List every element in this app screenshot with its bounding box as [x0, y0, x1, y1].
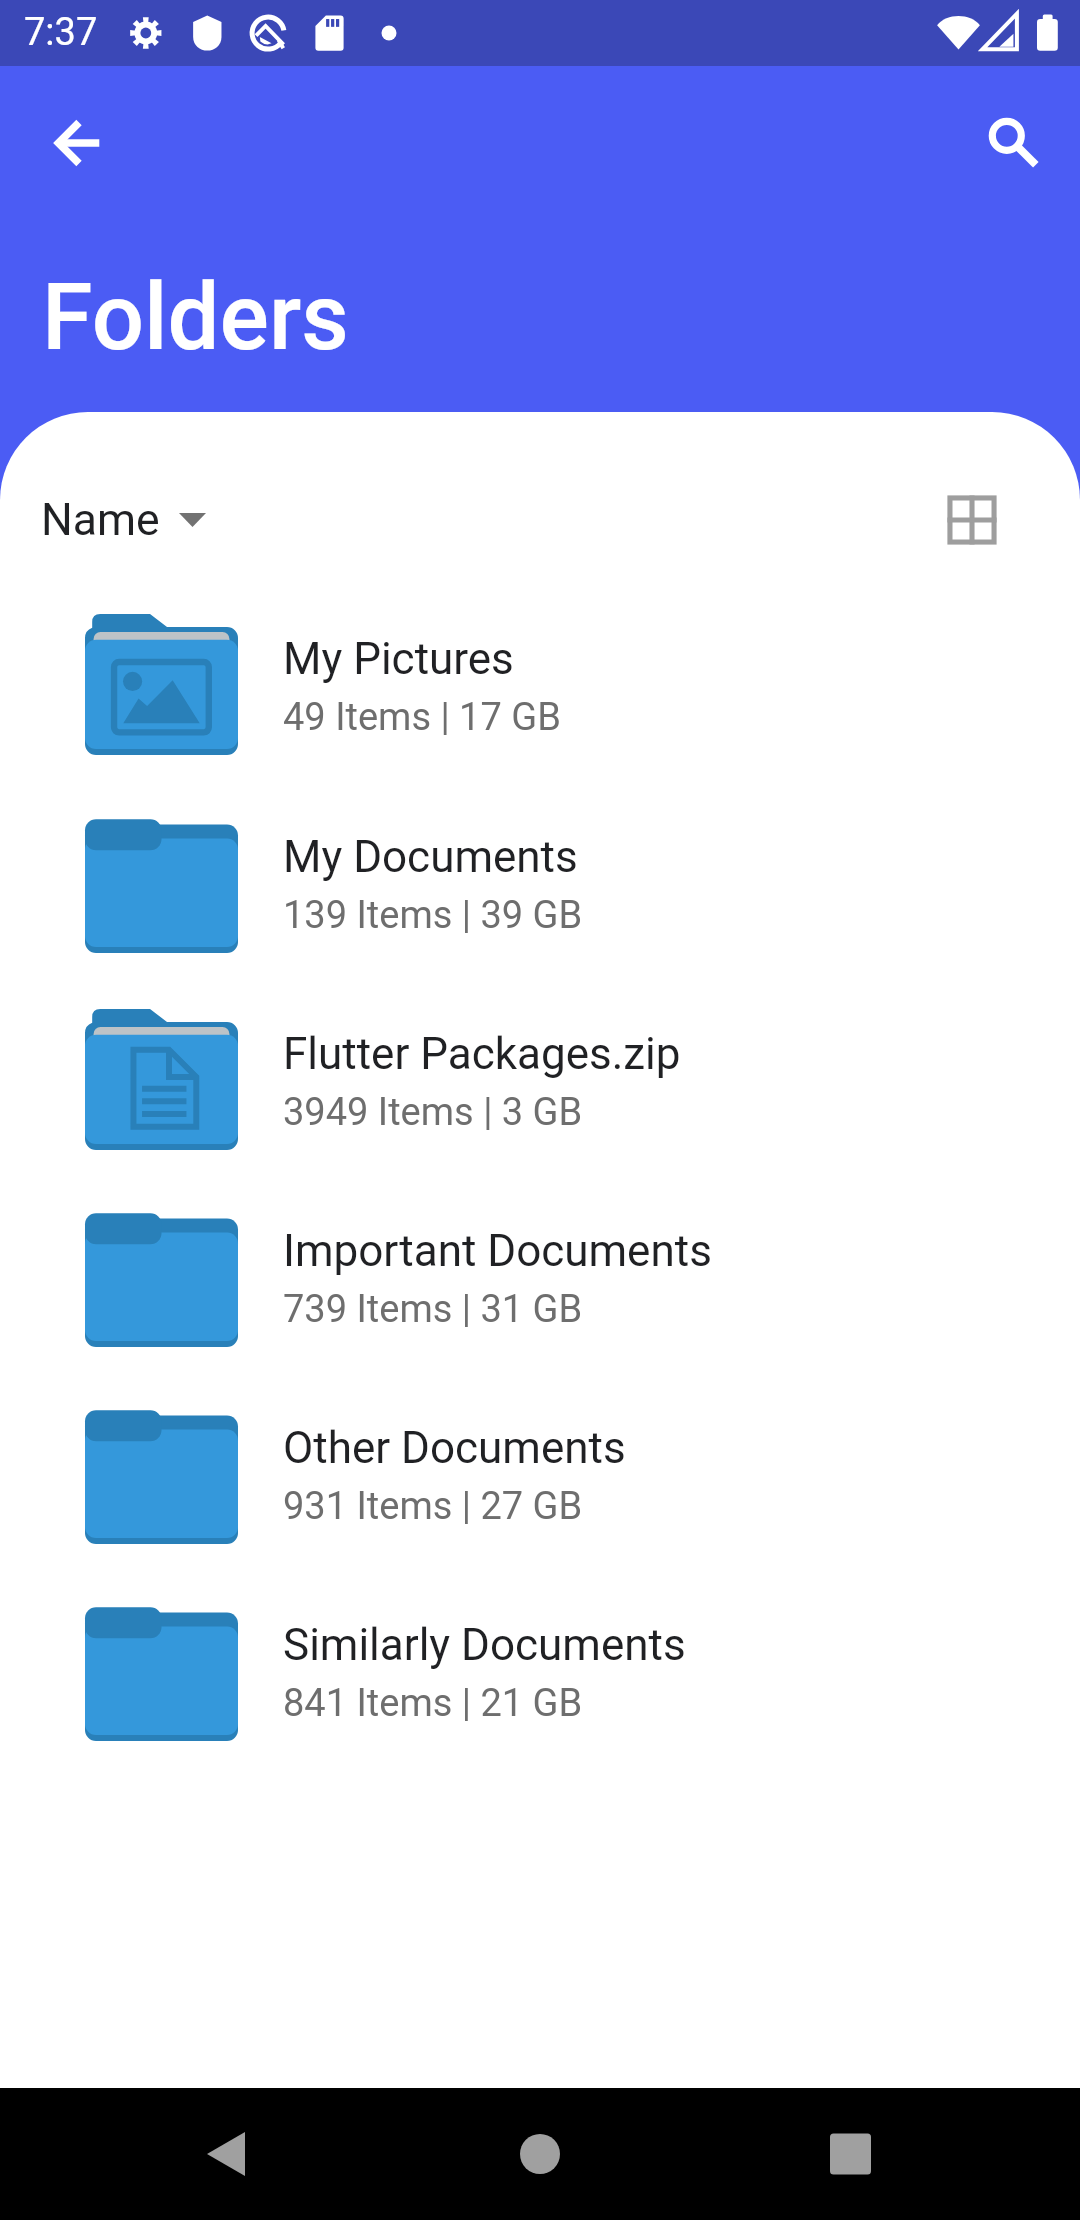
staticText: 49 Items | 17 GB	[283, 695, 561, 740]
button[interactable]: Flutter Packages.zip	[0, 983, 1080, 1180]
staticText: 7:37	[24, 10, 98, 55]
button[interactable]: Recent apps	[760, 2088, 940, 2220]
button[interactable]: Switch to grid view	[924, 472, 1020, 568]
staticText: Name	[41, 494, 160, 546]
staticText: Folders	[42, 264, 349, 372]
button[interactable]: Back	[27, 93, 127, 193]
staticText: My Documents	[283, 831, 578, 883]
button[interactable]: Name	[23, 482, 224, 558]
staticText: 841 Items | 21 GB	[283, 1681, 583, 1726]
button[interactable]: Similarly Documents	[0, 1574, 1080, 1771]
staticText: 931 Items | 27 GB	[283, 1484, 583, 1529]
staticText: Important Documents	[283, 1225, 712, 1277]
staticText: 139 Items | 39 GB	[283, 893, 583, 938]
button[interactable]: Home	[450, 2088, 630, 2220]
button[interactable]: Important Documents	[0, 1180, 1080, 1377]
staticText: Flutter Packages.zip	[283, 1028, 681, 1080]
button[interactable]: Search	[957, 86, 1057, 186]
staticText: 3949 Items | 3 GB	[283, 1090, 583, 1135]
staticText: Similarly Documents	[283, 1619, 686, 1671]
button[interactable]: My Documents	[0, 786, 1080, 983]
staticText: My Pictures	[283, 633, 514, 685]
staticText: 739 Items | 31 GB	[283, 1287, 583, 1332]
button[interactable]: Other Documents	[0, 1377, 1080, 1574]
button[interactable]: Back	[136, 2088, 316, 2220]
button[interactable]: My Pictures	[0, 588, 1080, 785]
staticText: Other Documents	[283, 1422, 626, 1474]
